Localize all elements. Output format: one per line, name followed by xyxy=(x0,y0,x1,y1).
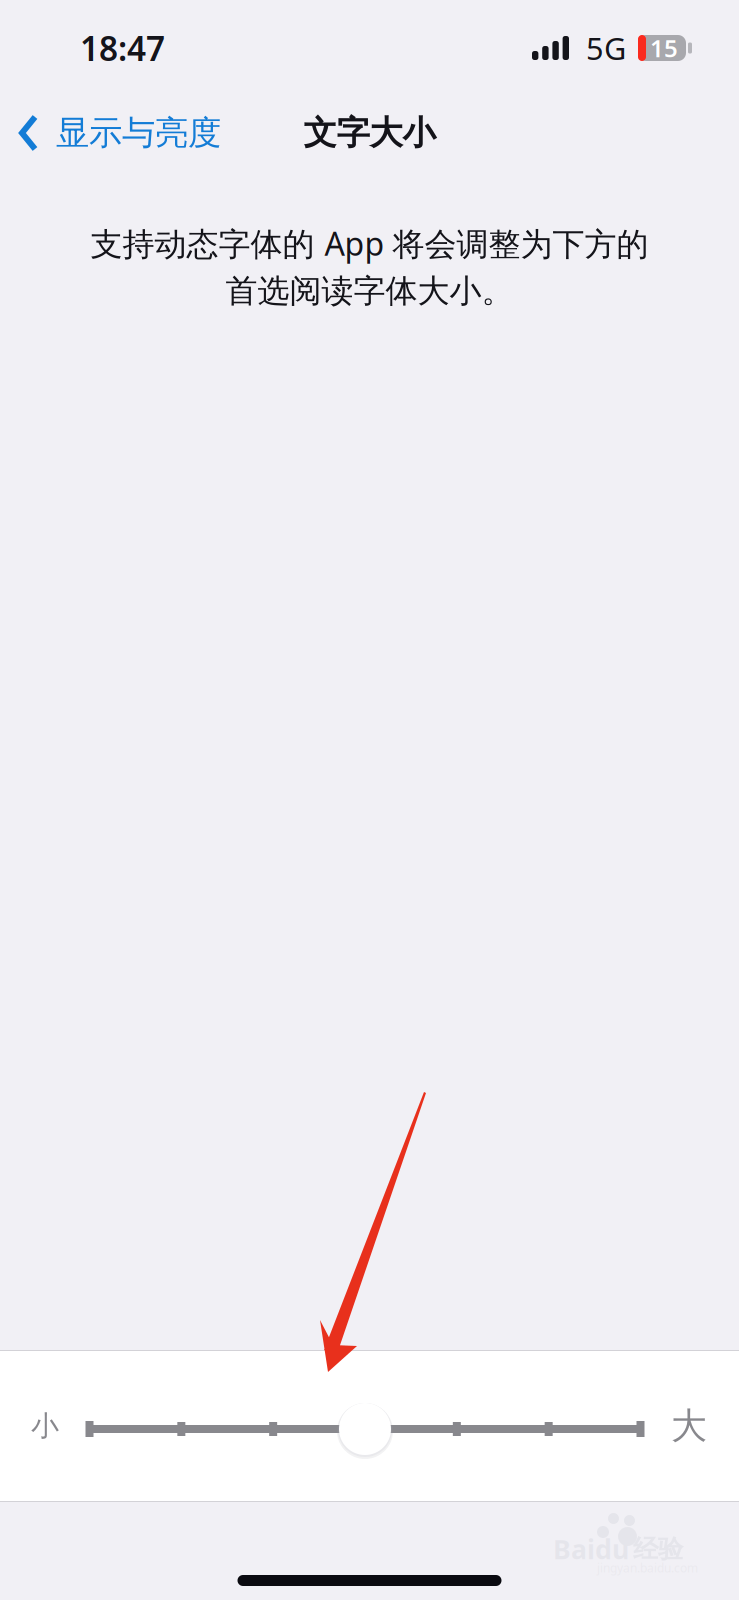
button[interactable]: 文字大小滑块 xyxy=(0,1351,739,1501)
staticText: 大 xyxy=(671,1404,707,1448)
staticText: 15 xyxy=(650,32,678,64)
staticText: 5G xyxy=(586,28,626,68)
staticText: 支持动态字体的 App 将会调整为下方的 xyxy=(90,222,648,264)
staticText: Baidu xyxy=(553,1531,629,1567)
button[interactable]: 显示与亮度 xyxy=(0,100,235,166)
staticText: 文字大小 xyxy=(303,112,435,153)
staticText: 显示与亮度 xyxy=(56,112,221,153)
staticText: 首选阅读字体大小。 xyxy=(225,271,513,311)
staticText: 18:47 xyxy=(80,26,165,70)
staticText: 小 xyxy=(31,1409,59,1443)
staticText: 经验 xyxy=(633,1533,683,1564)
